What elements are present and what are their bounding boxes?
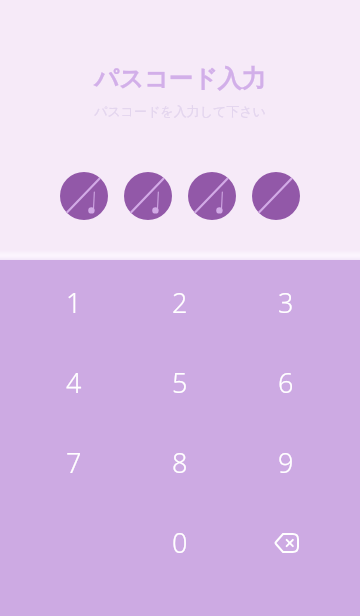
button[interactable]: Delete (233, 502, 339, 582)
staticText: 6 (278, 364, 294, 401)
button[interactable]: 7 (21, 422, 127, 502)
staticText: 1 (66, 284, 82, 321)
staticText: 0 (172, 524, 188, 561)
button[interactable]: 1 (21, 262, 127, 342)
staticText: 4 (66, 364, 82, 401)
staticText: 7 (66, 444, 82, 481)
staticText: パスコード入力 (94, 64, 266, 94)
button[interactable]: 3 (233, 262, 339, 342)
staticText: 9 (278, 444, 294, 481)
button[interactable]: 6 (233, 342, 339, 422)
button[interactable]: 9 (233, 422, 339, 502)
button[interactable]: 0 (127, 502, 233, 582)
staticText: 8 (172, 444, 188, 481)
staticText: 3 (278, 284, 294, 321)
button[interactable]: 2 (127, 262, 233, 342)
button[interactable]: 8 (127, 422, 233, 502)
staticText: 2 (172, 284, 188, 321)
button[interactable]: 4 (21, 342, 127, 422)
button[interactable]: 5 (127, 342, 233, 422)
staticText: パスコードを入力して下さい (94, 103, 266, 119)
staticText: 5 (172, 364, 188, 401)
